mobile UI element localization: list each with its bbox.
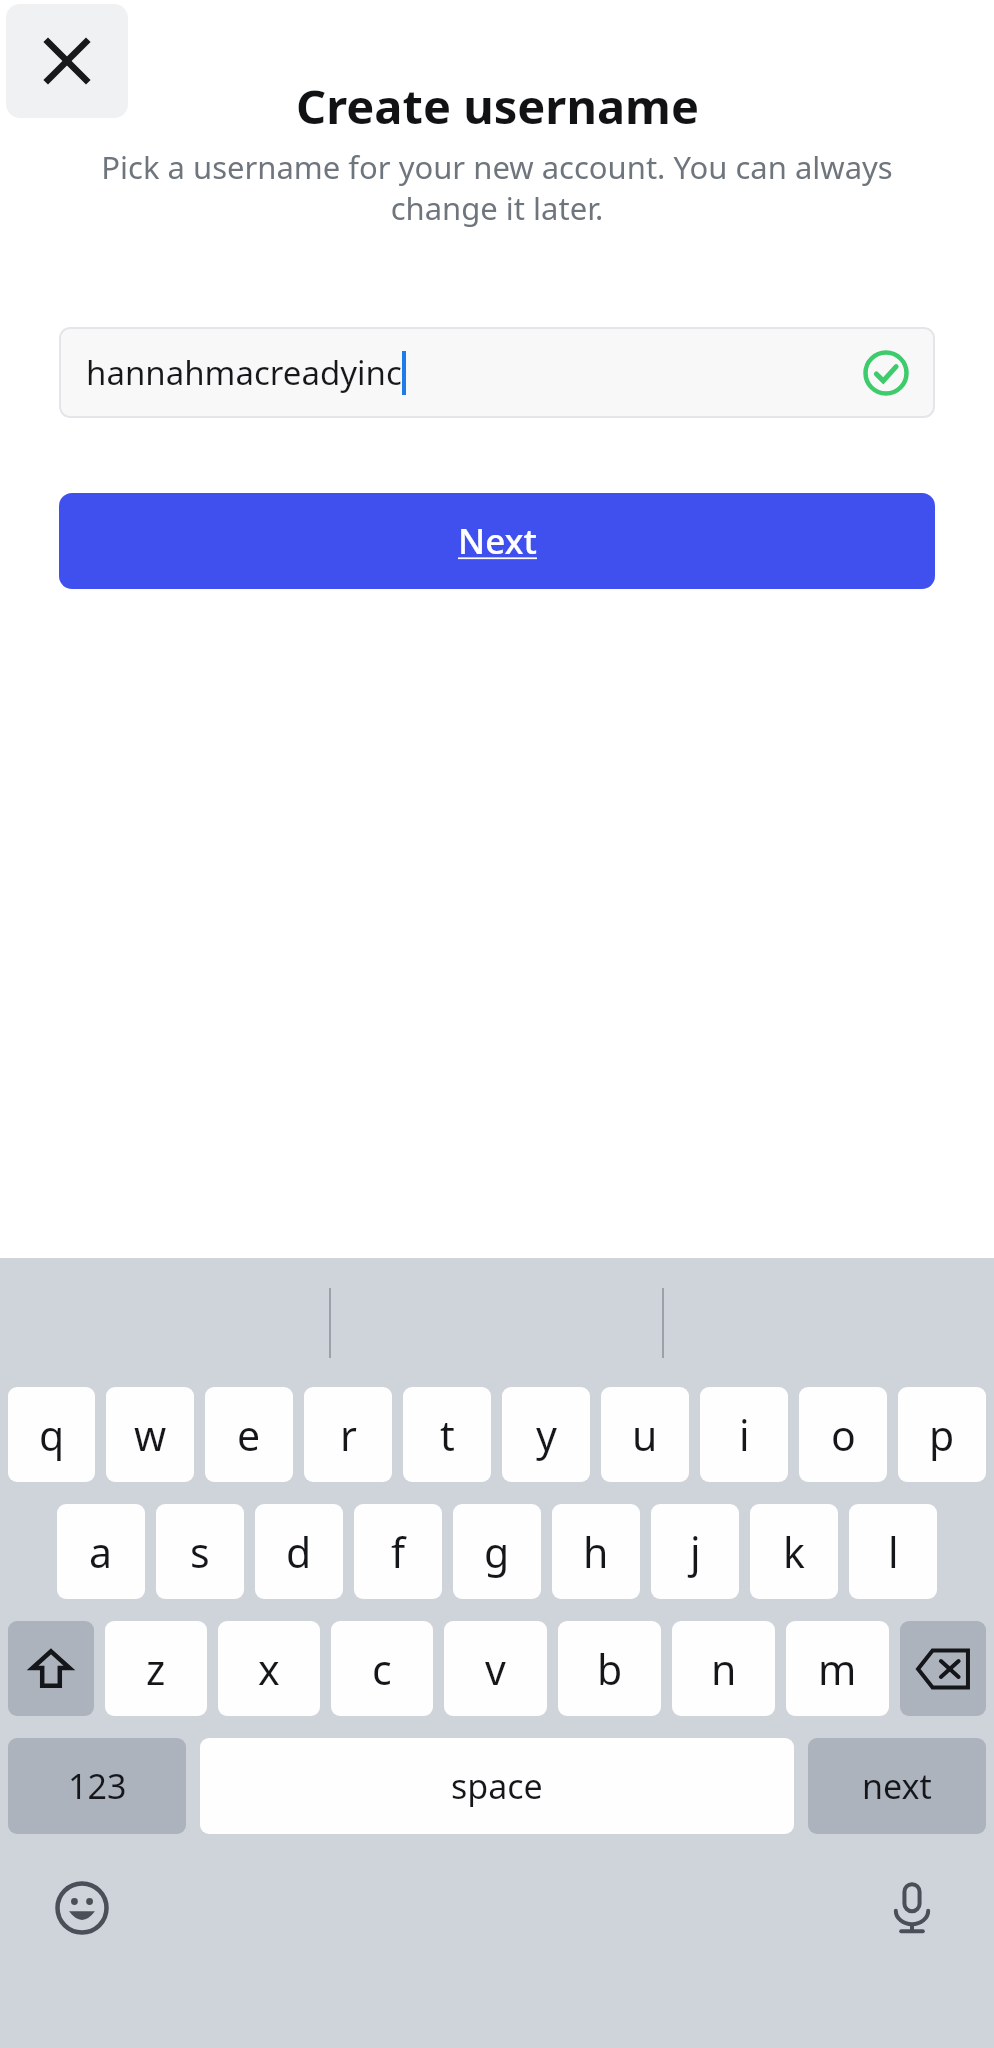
button[interactable]: Next — [59, 493, 935, 589]
button[interactable]: o — [799, 1387, 887, 1482]
button[interactable]: space — [200, 1738, 794, 1834]
button[interactable]: a — [57, 1504, 145, 1599]
staticText: space — [451, 1763, 543, 1809]
button[interactable]: w — [106, 1387, 194, 1482]
staticText: j — [690, 1524, 701, 1580]
staticText: m — [818, 1641, 857, 1697]
button[interactable]: d — [255, 1504, 343, 1599]
button[interactable]: p — [898, 1387, 986, 1482]
button[interactable]: Close — [6, 4, 128, 118]
button[interactable]: k — [750, 1504, 838, 1599]
button[interactable]: j — [651, 1504, 739, 1599]
button[interactable]: f — [354, 1504, 442, 1599]
button[interactable]: Voice input — [876, 1872, 948, 1944]
staticText: v — [485, 1641, 506, 1697]
staticText: o — [831, 1407, 856, 1463]
staticText: b — [597, 1641, 623, 1697]
button[interactable]: t — [403, 1387, 491, 1482]
button[interactable]: m — [786, 1621, 889, 1716]
button[interactable]: c — [331, 1621, 433, 1716]
staticText: f — [391, 1524, 406, 1580]
button[interactable]: s — [156, 1504, 244, 1599]
staticText: t — [440, 1407, 455, 1463]
button[interactable]: Backspace — [900, 1621, 986, 1716]
button[interactable]: y — [502, 1387, 590, 1482]
button[interactable]: e — [205, 1387, 293, 1482]
staticText: n — [711, 1641, 737, 1697]
staticText: u — [632, 1407, 658, 1463]
button[interactable]: q — [8, 1387, 95, 1482]
staticText: h — [583, 1524, 609, 1580]
staticText: hannahmacreadyinc — [86, 350, 402, 395]
button[interactable]: Shift — [8, 1621, 94, 1716]
button[interactable]: r — [304, 1387, 392, 1482]
staticText: y — [536, 1407, 557, 1463]
staticText: g — [484, 1524, 510, 1580]
staticText: p — [929, 1407, 955, 1463]
staticText: e — [237, 1407, 261, 1463]
staticText: q — [39, 1407, 65, 1463]
staticText: 123 — [68, 1763, 127, 1809]
button[interactable]: next — [808, 1738, 986, 1834]
button[interactable]: l — [849, 1504, 937, 1599]
button[interactable]: n — [672, 1621, 775, 1716]
staticText: r — [340, 1407, 357, 1463]
button[interactable]: i — [700, 1387, 788, 1482]
button[interactable]: b — [558, 1621, 661, 1716]
staticText: Next — [458, 517, 537, 565]
staticText: Pick a username for your new account. Yo… — [76, 146, 918, 229]
staticText: a — [89, 1524, 113, 1580]
staticText: l — [888, 1524, 899, 1580]
staticText: z — [146, 1641, 166, 1697]
button[interactable]: Emoji — [46, 1872, 118, 1944]
staticText: s — [190, 1524, 210, 1580]
button[interactable]: hannahmacreadyinc — [59, 327, 935, 418]
staticText: d — [286, 1524, 312, 1580]
staticText: i — [739, 1407, 750, 1463]
button[interactable]: g — [453, 1504, 541, 1599]
button[interactable]: h — [552, 1504, 640, 1599]
button[interactable]: z — [105, 1621, 207, 1716]
button[interactable]: u — [601, 1387, 689, 1482]
button[interactable]: 123 — [8, 1738, 186, 1834]
button[interactable]: x — [218, 1621, 320, 1716]
staticText: k — [783, 1524, 805, 1580]
staticText: Create username — [296, 74, 699, 138]
staticText: c — [372, 1641, 392, 1697]
staticText: w — [134, 1407, 167, 1463]
staticText: next — [862, 1763, 932, 1809]
button[interactable]: v — [444, 1621, 547, 1716]
staticText: x — [258, 1641, 280, 1697]
